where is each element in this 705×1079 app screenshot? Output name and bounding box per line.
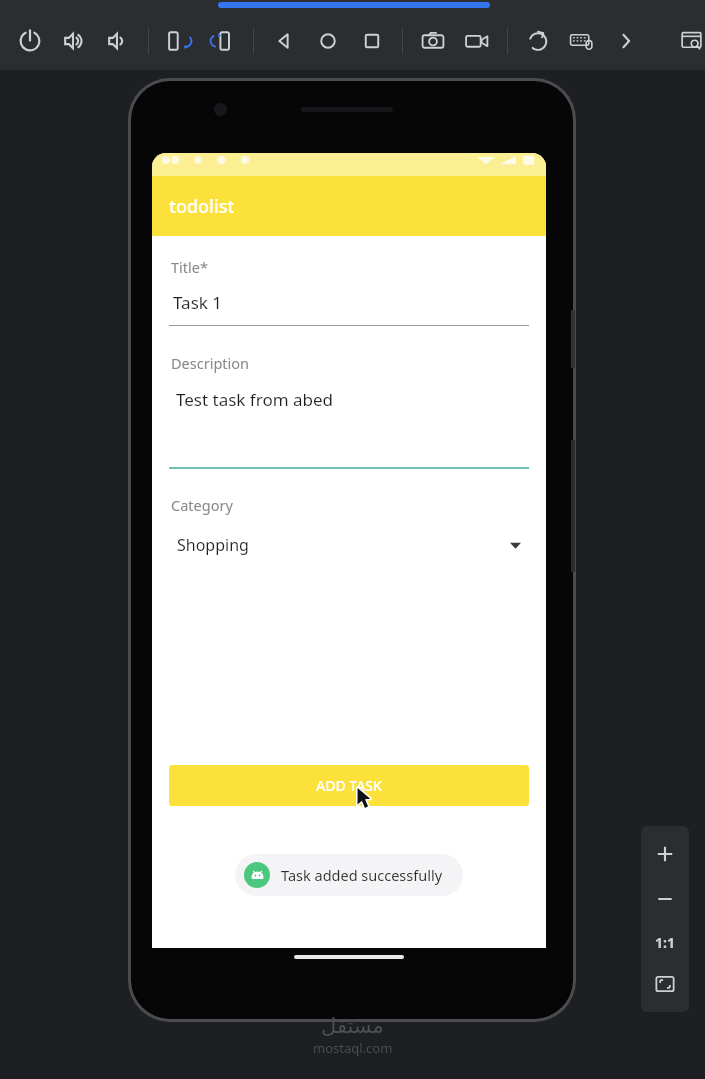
staticText: 1:1 bbox=[655, 933, 675, 952]
button[interactable]: Rotate right bbox=[201, 19, 245, 63]
button[interactable]: Volume down bbox=[96, 19, 140, 63]
staticText: مستقل bbox=[321, 1014, 384, 1038]
button[interactable]: Keyboard and mouse bbox=[560, 19, 604, 63]
button[interactable]: Home bbox=[306, 19, 350, 63]
button[interactable]: Window bbox=[676, 19, 705, 63]
button[interactable]: Zoom in bbox=[648, 837, 682, 871]
button[interactable]: Shopping bbox=[169, 529, 529, 561]
button[interactable]: Volume up bbox=[52, 19, 96, 63]
button[interactable]: Screenshot bbox=[411, 19, 455, 63]
button[interactable]: More bbox=[604, 19, 648, 63]
button[interactable]: Zoom out bbox=[648, 882, 682, 916]
staticText: Title* bbox=[171, 257, 208, 277]
staticText: Description bbox=[171, 353, 250, 373]
button[interactable]: Record screen bbox=[455, 19, 499, 63]
button[interactable]: Rotate left bbox=[157, 19, 201, 63]
button[interactable]: Rotate back bbox=[516, 19, 560, 63]
button[interactable]: Power bbox=[8, 19, 52, 63]
staticText: ADD TASK bbox=[316, 776, 382, 795]
button[interactable]: Back bbox=[262, 19, 306, 63]
button[interactable]: ADD TASK bbox=[169, 765, 529, 806]
staticText: mostaql.com bbox=[313, 1039, 393, 1057]
staticText: Category bbox=[171, 495, 233, 515]
button[interactable]: Task added successfully bbox=[235, 854, 463, 896]
button[interactable]: Actual size bbox=[651, 928, 679, 956]
staticText: Shopping bbox=[177, 534, 249, 556]
button[interactable]: Overview bbox=[350, 19, 394, 63]
staticText: Task added successfully bbox=[281, 865, 443, 885]
button[interactable]: Fit to screen bbox=[648, 967, 682, 1001]
staticText: Task 1 bbox=[173, 291, 222, 314]
staticText: Test task from abed bbox=[176, 388, 334, 411]
other: Open category dropdown bbox=[505, 535, 525, 555]
staticText: todolist bbox=[169, 194, 235, 219]
